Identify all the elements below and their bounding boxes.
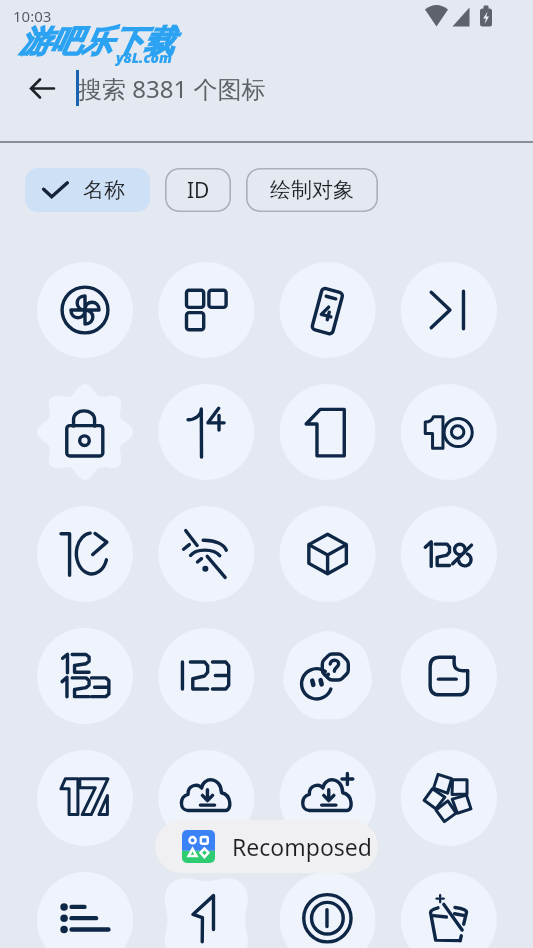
button[interactable]: Icon 19 xyxy=(242,706,363,828)
button[interactable]: Icon 14 xyxy=(121,584,242,706)
button[interactable]: Icon 9 xyxy=(0,462,121,584)
staticText: 10:03 xyxy=(13,6,52,26)
staticText: 游吧乐下载 xyxy=(19,22,174,61)
button[interactable]: 名称 xyxy=(25,168,150,212)
staticText: 名称 xyxy=(83,177,125,203)
button[interactable]: Icon 1 xyxy=(0,218,121,340)
button[interactable]: Icon 5 xyxy=(0,340,121,462)
staticText: 绘制对象 xyxy=(270,177,354,203)
staticText: ID xyxy=(187,176,210,205)
button[interactable]: 绘制对象 xyxy=(246,168,378,212)
button[interactable]: Icon 7 xyxy=(242,340,363,462)
button[interactable]: Recomposed xyxy=(155,820,378,873)
button[interactable]: Icon 2 xyxy=(121,218,242,340)
button[interactable]: Icon 4 xyxy=(363,218,484,340)
button[interactable]: Icon 12 xyxy=(363,462,484,584)
button[interactable]: Icon 10 xyxy=(121,462,242,584)
button[interactable]: Icon 13 xyxy=(0,584,121,706)
button[interactable]: Icon 23 xyxy=(242,828,363,948)
button[interactable]: Icon 18 xyxy=(121,706,242,828)
staticText: y8L.com xyxy=(116,48,172,67)
button[interactable]: Icon 11 xyxy=(242,462,363,584)
button[interactable]: Icon 3 xyxy=(242,218,363,340)
button[interactable]: Icon 8 xyxy=(363,340,484,462)
staticText: Recomposed xyxy=(232,831,372,862)
button[interactable]: Back xyxy=(18,64,66,112)
button[interactable]: Icon 24 xyxy=(363,828,484,948)
button[interactable]: Icon 6 xyxy=(121,340,242,462)
button[interactable]: ID xyxy=(165,168,231,212)
button[interactable]: Icon 20 xyxy=(363,706,484,828)
button[interactable]: Icon 22 xyxy=(121,828,242,948)
button[interactable]: Icon 21 xyxy=(0,828,121,948)
staticText: 搜索 8381 个图标 xyxy=(78,72,266,105)
button[interactable]: Icon 15 xyxy=(242,584,363,706)
button[interactable]: Icon 17 xyxy=(0,706,121,828)
button[interactable]: Icon 16 xyxy=(363,584,484,706)
